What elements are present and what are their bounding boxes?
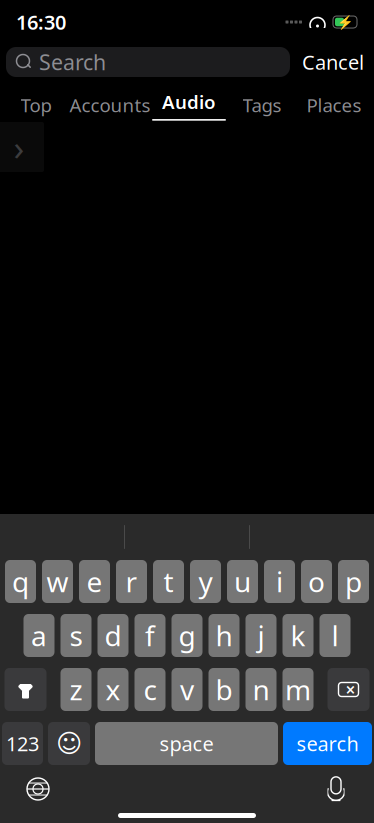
button[interactable]: search [283, 722, 372, 765]
staticText: s [69, 617, 82, 654]
staticText: t [163, 563, 173, 600]
staticText: b [215, 671, 232, 708]
button[interactable]: i [264, 560, 295, 603]
button[interactable]: u [227, 560, 258, 603]
staticText: Search [39, 48, 106, 76]
staticText: ⚡ [336, 14, 353, 30]
button[interactable]: m [282, 668, 313, 711]
staticText: c [143, 671, 156, 708]
staticText: m [285, 671, 311, 708]
staticText: r [125, 563, 137, 600]
button[interactable]: Places [297, 89, 371, 121]
staticText: space [159, 730, 213, 757]
staticText: p [345, 563, 362, 600]
staticText: k [290, 617, 305, 654]
button[interactable]: Accounts [69, 89, 151, 121]
button[interactable]: t [153, 560, 184, 603]
button[interactable]: e [79, 560, 110, 603]
button[interactable]: space [95, 722, 278, 765]
button[interactable]: a [23, 614, 54, 657]
button[interactable]: 123 [2, 722, 43, 765]
button[interactable]: s [60, 614, 91, 657]
staticText: a [31, 617, 47, 654]
staticText: Top [20, 93, 51, 117]
button[interactable]: z [60, 668, 91, 711]
staticText: n [252, 671, 269, 708]
button[interactable]: b [208, 668, 239, 711]
staticText: l [331, 617, 338, 654]
staticText: Tags [242, 93, 281, 117]
button[interactable]: Emoji [48, 722, 90, 765]
staticText: Places [306, 93, 361, 117]
button[interactable]: r [116, 560, 147, 603]
button[interactable]: n [245, 668, 276, 711]
staticText: g [178, 617, 195, 654]
staticText: f [145, 617, 155, 654]
button[interactable]: p [338, 560, 369, 603]
button[interactable]: v [171, 668, 202, 711]
button[interactable]: Next keyboard [16, 769, 60, 809]
staticText: 123 [6, 730, 39, 757]
staticText: i [276, 563, 283, 600]
button[interactable]: h [208, 614, 239, 657]
staticText: › [13, 124, 24, 170]
staticText: 16:30 [16, 9, 66, 35]
button[interactable]: x [97, 668, 128, 711]
button[interactable]: k [282, 614, 313, 657]
button[interactable]: q [5, 560, 36, 603]
staticText: search [296, 730, 358, 757]
button[interactable]: Delete [327, 668, 369, 711]
staticText: × [345, 678, 355, 701]
staticText: Accounts [69, 93, 150, 117]
staticText: j [257, 617, 264, 654]
button[interactable]: w [42, 560, 73, 603]
staticText: d [104, 617, 121, 654]
button[interactable]: Tags [227, 89, 297, 121]
staticText: z [69, 671, 82, 708]
staticText: q [12, 563, 29, 600]
button[interactable]: Top [3, 89, 69, 121]
button[interactable]: j [245, 614, 276, 657]
staticText: e [86, 563, 102, 600]
button[interactable]: Audio [151, 88, 227, 122]
staticText: ☺ [56, 729, 82, 758]
staticText: o [308, 563, 325, 600]
staticText: x [105, 671, 120, 708]
staticText: u [234, 563, 251, 600]
button[interactable]: o [301, 560, 332, 603]
button[interactable]: g [171, 614, 202, 657]
button[interactable]: Dictation [314, 769, 358, 809]
staticText: y [198, 563, 212, 600]
button[interactable]: c [134, 668, 165, 711]
staticText: Audio [162, 89, 216, 114]
button[interactable]: Cancel [298, 47, 368, 77]
button[interactable]: y [190, 560, 221, 603]
staticText: w [46, 563, 68, 600]
staticText: h [215, 617, 232, 654]
staticText: Cancel [302, 49, 364, 75]
button[interactable]: Open result [0, 122, 44, 172]
button[interactable]: Search [6, 47, 290, 77]
button[interactable]: f [134, 614, 165, 657]
button[interactable]: Shift [4, 668, 46, 711]
staticText: v [180, 671, 194, 708]
button[interactable]: d [97, 614, 128, 657]
button[interactable]: l [319, 614, 350, 657]
